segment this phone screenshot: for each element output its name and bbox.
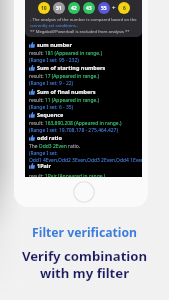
staticText: Verify combination with my filter [0, 247, 169, 281]
staticText: 31 [56, 5, 62, 12]
staticText: - The analysis of the number is compared… [30, 17, 142, 28]
button[interactable]: odd ratio [29, 134, 142, 164]
staticText: (Range I set: 6 - 35) [29, 104, 74, 111]
button[interactable]: Filter verification [32, 224, 137, 241]
staticText: Sum of starting numbers [37, 64, 106, 71]
staticText: (Range I set: 95 - 232) [29, 57, 79, 64]
button[interactable]: sum number [29, 41, 142, 64]
staticText: + [112, 4, 116, 12]
staticText: odd ratio [37, 134, 62, 141]
staticText: Sum of final numbers [37, 88, 96, 95]
staticText: 43 [86, 5, 92, 12]
button[interactable]: Sum of starting numbers [29, 64, 142, 87]
staticText: (Range I set: 19,708,178 - 275,464,427) [29, 127, 118, 134]
staticText: Odd1 4Even,Odd2 3Even,Odd3 2Even,Odd4 1E… [29, 157, 142, 164]
staticText: sum number [37, 41, 72, 48]
staticText: result: 181 (Appeared in range.) [29, 50, 102, 57]
staticText: 6 [123, 5, 126, 12]
button[interactable]: Sum of final numbers [29, 88, 142, 111]
staticText: result: 11 (Appeared in range.) [29, 97, 100, 104]
button[interactable]: Number 6 [118, 2, 130, 14]
button[interactable]: Number 42 [68, 2, 80, 14]
staticText: result: 163,890,208 (Appeared in range.) [29, 120, 122, 127]
staticText: 10 [41, 5, 47, 12]
button[interactable]: Number 31 [53, 2, 65, 14]
staticText: (Range I set: [29, 150, 58, 157]
button[interactable]: Number 55 [98, 2, 110, 14]
button[interactable]: Number 43 [83, 2, 95, 14]
button[interactable]: 1Pair [29, 162, 51, 169]
button[interactable]: Sequence [29, 111, 142, 134]
staticText: ** Megaball/Powerball is excluded from a… [30, 29, 130, 35]
staticText: 55 [101, 5, 107, 12]
staticText: result: 1Pair (Appeared in range.) [29, 173, 106, 177]
staticText: 1Pair [37, 162, 51, 169]
staticText: Sequence [37, 111, 64, 118]
staticText: (Range I set: 9 - 22) [29, 80, 74, 87]
button[interactable]: Number 10 [38, 2, 50, 14]
staticText: 42 [71, 5, 77, 12]
staticText: result: 17 (Appeared in range.) [29, 73, 100, 80]
staticText: The Odd3 2Even ratio. [29, 143, 81, 150]
